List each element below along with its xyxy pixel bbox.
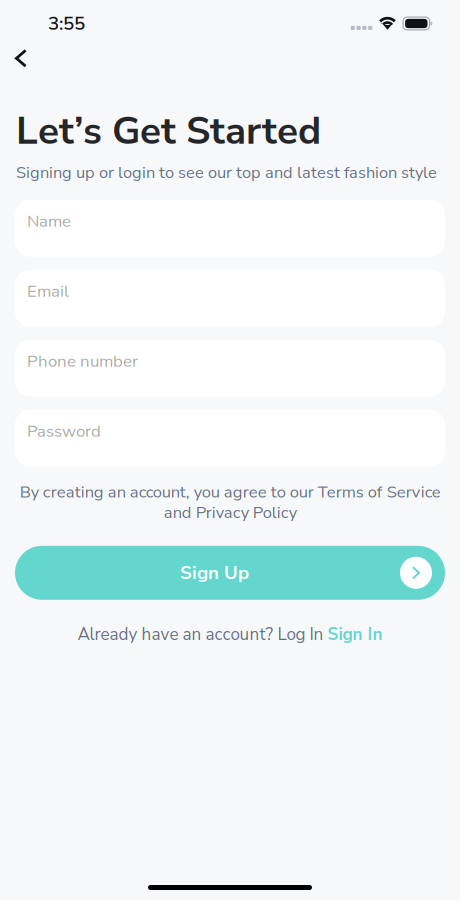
staticText: Email bbox=[27, 280, 69, 303]
staticText: Name bbox=[27, 210, 71, 233]
button[interactable]: Password bbox=[15, 410, 445, 467]
staticText: Already have an account? Log In bbox=[77, 623, 323, 646]
staticText: 3:55 bbox=[48, 11, 85, 36]
staticText: Phone number bbox=[27, 350, 138, 373]
button[interactable]: Name bbox=[15, 200, 445, 257]
button[interactable]: Already have an account? Log In bbox=[67, 618, 392, 651]
button[interactable]: Back bbox=[0, 40, 43, 77]
staticText: Password bbox=[27, 420, 101, 443]
staticText: By creating an account, you agree to our… bbox=[19, 481, 440, 524]
staticText: Sign In bbox=[327, 623, 382, 646]
button[interactable]: Phone number bbox=[15, 340, 445, 397]
button[interactable]: Email bbox=[15, 270, 445, 327]
staticText: Let’s Get Started bbox=[16, 105, 321, 157]
staticText: Sign Up bbox=[180, 560, 249, 586]
staticText: Signing up or login to see our top and l… bbox=[16, 161, 437, 184]
button[interactable]: Sign Up bbox=[0, 546, 460, 600]
